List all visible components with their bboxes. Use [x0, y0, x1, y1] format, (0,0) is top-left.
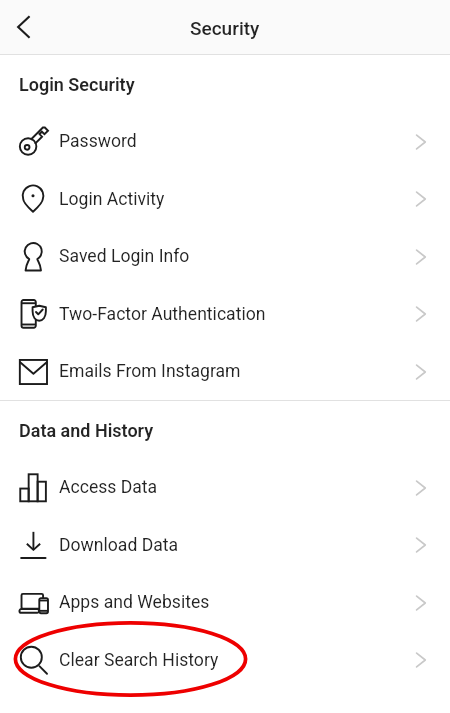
button[interactable]: Apps and Websites — [0, 574, 450, 631]
staticText: Data and History — [19, 420, 154, 441]
button[interactable]: Two-Factor Authentication — [0, 285, 450, 343]
staticText: Emails From Instagram — [59, 361, 241, 382]
staticText: Two-Factor Authentication — [59, 304, 266, 325]
staticText: Security — [190, 17, 260, 39]
staticText: Login Security — [19, 74, 135, 95]
staticText: Clear Search History — [59, 650, 219, 671]
staticText: Saved Login Info — [59, 246, 190, 267]
button[interactable]: Emails From Instagram — [0, 343, 450, 400]
staticText: Access Data — [59, 477, 158, 498]
button[interactable]: Login Activity — [0, 170, 450, 228]
button[interactable]: Password — [0, 113, 450, 170]
staticText: Password — [59, 131, 137, 152]
button[interactable]: Clear Search History — [0, 631, 450, 689]
button[interactable]: Download Data — [0, 516, 450, 574]
staticText: Apps and Websites — [59, 592, 210, 613]
button[interactable]: Back — [0, 1, 47, 55]
staticText: Login Activity — [59, 189, 165, 210]
staticText: Download Data — [59, 535, 179, 556]
button[interactable]: Access Data — [0, 459, 450, 516]
button[interactable]: Saved Login Info — [0, 228, 450, 285]
